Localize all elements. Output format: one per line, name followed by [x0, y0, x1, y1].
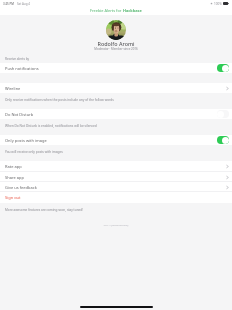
- button[interactable]: Rate app: [0, 161, 232, 172]
- staticText: Give us feedback: [5, 185, 226, 190]
- staticText: Sat Aug 4: [17, 2, 30, 6]
- button[interactable]: Wireline: [0, 83, 232, 93]
- staticText: Rate app: [5, 164, 226, 169]
- button[interactable]: Sign out: [0, 192, 232, 203]
- staticText: Rodolfo Aromi: [0, 40, 232, 47]
- staticText: Wireline: [5, 86, 226, 91]
- staticText: Do Not Disturb: [5, 112, 217, 117]
- staticText: Hackbase: [123, 8, 142, 13]
- other: Open: [226, 185, 229, 190]
- staticText: 3:25 PM: [3, 2, 14, 6]
- button[interactable]: On: [217, 64, 229, 72]
- staticText: Only posts with image: [5, 138, 217, 143]
- button[interactable]: Share app: [0, 172, 232, 182]
- other: Open: [226, 86, 229, 91]
- button[interactable]: On: [217, 136, 229, 144]
- staticText: Only receive notifications when the post…: [5, 98, 114, 102]
- other: Open: [226, 175, 229, 180]
- staticText: Receive alerts by: [5, 57, 30, 61]
- button[interactable]: Do Not Disturb: [0, 109, 232, 119]
- staticText: Share app: [5, 175, 226, 180]
- staticText: You will receive only posts with images: [5, 150, 63, 154]
- button[interactable]: Give us feedback: [0, 182, 232, 192]
- staticText: v0.1.1 (development): [0, 223, 232, 226]
- staticText: Freebie Alerts for: [90, 8, 123, 13]
- staticText: When Do Not Disturb is enabled, notifica…: [5, 124, 97, 128]
- staticText: More awesome features are coming soon, s…: [5, 208, 84, 212]
- staticText: Moderator · Member since 2016: [0, 47, 232, 51]
- staticText: Sign out: [5, 195, 229, 200]
- staticText: Push notifications: [5, 66, 217, 71]
- button[interactable]: Push notifications: [0, 63, 232, 73]
- staticText: 100%: [214, 2, 222, 6]
- button[interactable]: Off: [217, 110, 229, 118]
- button[interactable]: Only posts with image: [0, 135, 232, 145]
- other: Open: [226, 164, 229, 169]
